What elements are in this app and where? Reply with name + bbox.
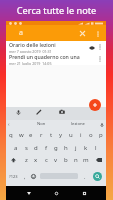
staticText: b bbox=[64, 156, 68, 164]
staticText: Cerca tutte le note bbox=[0, 4, 113, 17]
button[interactable]: f bbox=[41, 141, 51, 154]
staticText: q bbox=[9, 131, 13, 139]
button[interactable]: u bbox=[66, 128, 76, 141]
button[interactable]: Search bbox=[93, 172, 102, 181]
staticText: c bbox=[45, 156, 48, 164]
button[interactable]: Backspace bbox=[91, 154, 106, 166]
button[interactable]: g bbox=[51, 141, 61, 154]
staticText: mer 7 agosto 2019, 01:31 bbox=[9, 49, 52, 53]
button[interactable]: Clear bbox=[77, 28, 88, 39]
staticText: h bbox=[64, 144, 68, 152]
button[interactable]: c bbox=[41, 154, 51, 166]
button[interactable]: n bbox=[71, 154, 81, 166]
staticText: Orario delle lezioni bbox=[9, 41, 56, 48]
button[interactable]: More bbox=[96, 55, 104, 63]
staticText: Non bbox=[37, 121, 46, 127]
button[interactable]: More bbox=[96, 43, 104, 51]
button[interactable]: Back bbox=[24, 188, 34, 198]
staticText: s bbox=[25, 144, 28, 152]
button[interactable]: Draw bbox=[34, 108, 44, 116]
staticText: m bbox=[83, 156, 89, 164]
staticText: z bbox=[25, 156, 28, 164]
staticText: p bbox=[99, 131, 103, 139]
staticText: w bbox=[19, 131, 24, 139]
button[interactable]: , bbox=[20, 166, 29, 186]
button[interactable]: Emoji bbox=[29, 166, 38, 186]
button[interactable]: ?123 bbox=[6, 166, 20, 186]
button[interactable]: Orario delle lezioni bbox=[6, 41, 106, 53]
staticText: , bbox=[24, 173, 26, 180]
staticText: f bbox=[45, 144, 48, 152]
button[interactable]: Voice input bbox=[98, 121, 105, 128]
button[interactable]: a bbox=[11, 141, 21, 154]
button[interactable]: New note bbox=[89, 99, 101, 111]
button[interactable]: y bbox=[56, 128, 66, 141]
staticText: ‹ bbox=[8, 121, 10, 128]
staticText: v bbox=[54, 156, 58, 164]
staticText: u bbox=[69, 131, 73, 139]
button[interactable]: j bbox=[71, 141, 81, 154]
staticText: l bbox=[95, 144, 97, 152]
button[interactable]: Voice note bbox=[13, 108, 23, 116]
staticText: lezione bbox=[71, 121, 85, 127]
staticText: n bbox=[74, 156, 78, 164]
staticText: o bbox=[89, 131, 93, 139]
staticText: mer 21 luglio 2019, 14:05 bbox=[9, 61, 52, 65]
button[interactable]: s bbox=[21, 141, 31, 154]
button[interactable]: d bbox=[31, 141, 41, 154]
button[interactable]: h bbox=[61, 141, 71, 154]
staticText: . bbox=[84, 173, 86, 180]
button[interactable]: . bbox=[80, 166, 89, 186]
button[interactable]: Shift bbox=[6, 154, 21, 166]
button[interactable]: m bbox=[81, 154, 91, 166]
staticText: a bbox=[19, 28, 23, 38]
staticText: i bbox=[80, 131, 82, 139]
button[interactable]: l bbox=[91, 141, 101, 154]
staticText: d bbox=[34, 144, 38, 152]
button[interactable]: Camera bbox=[57, 108, 67, 116]
staticText: k bbox=[84, 144, 88, 152]
button[interactable]: t bbox=[46, 128, 56, 141]
button[interactable]: z bbox=[21, 154, 31, 166]
staticText: a bbox=[14, 144, 18, 152]
button[interactable]: x bbox=[31, 154, 41, 166]
button[interactable]: v bbox=[51, 154, 61, 166]
button[interactable]: w bbox=[16, 128, 26, 141]
staticText: x bbox=[34, 156, 38, 164]
staticText: g bbox=[54, 144, 58, 152]
button[interactable]: e bbox=[26, 128, 36, 141]
staticText: ?123 bbox=[9, 174, 18, 179]
button[interactable]: Visibility bbox=[87, 43, 96, 52]
staticText: r bbox=[40, 131, 43, 139]
button[interactable]: Prendi un quaderno con una lezione bbox=[6, 53, 106, 65]
staticText: j bbox=[75, 144, 77, 152]
button[interactable]: b bbox=[61, 154, 71, 166]
button[interactable]: p bbox=[96, 128, 106, 141]
staticText: Prendi un quaderno con una lezione bbox=[9, 53, 87, 60]
staticText: e bbox=[29, 131, 33, 139]
staticText: t bbox=[50, 131, 53, 139]
staticText: y bbox=[59, 131, 63, 139]
button[interactable]: More options bbox=[92, 28, 103, 39]
button[interactable]: r bbox=[36, 128, 46, 141]
button[interactable]: Recents bbox=[79, 188, 89, 198]
button[interactable]: Home bbox=[51, 188, 61, 198]
button[interactable]: q bbox=[6, 128, 16, 141]
button[interactable]: o bbox=[86, 128, 96, 141]
button[interactable]: k bbox=[81, 141, 91, 154]
button[interactable]: i bbox=[76, 128, 86, 141]
